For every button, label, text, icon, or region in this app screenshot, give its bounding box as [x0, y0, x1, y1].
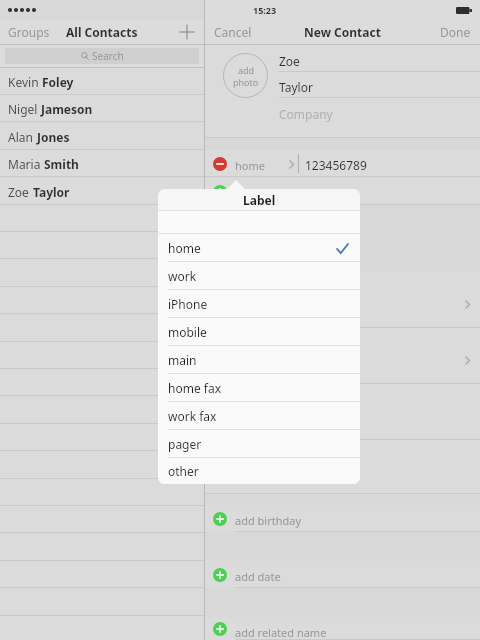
staticText: iPhone [168, 296, 208, 312]
button[interactable] [205, 440, 480, 494]
staticText: Maria [8, 156, 44, 172]
button[interactable]: Kevin [0, 68, 204, 95]
staticText: Company [279, 106, 333, 122]
button[interactable]: pager [158, 430, 360, 458]
staticText: Zoe [279, 53, 300, 69]
staticText: Label [243, 192, 276, 208]
staticText: 15:23 [253, 4, 277, 16]
button[interactable]: Alan [0, 123, 204, 150]
staticText: Groups [8, 24, 50, 40]
staticText: Foley [42, 74, 74, 90]
button[interactable]: Maria [0, 150, 204, 177]
button[interactable]: add related name [205, 617, 480, 640]
button[interactable]: Remove phone [213, 157, 227, 171]
button[interactable]: work fax [158, 402, 360, 430]
staticText: home [235, 158, 265, 173]
staticText: New Contact [304, 24, 381, 40]
staticText: home [168, 240, 201, 256]
staticText: 123456789 [305, 157, 367, 173]
staticText: Taylor [33, 184, 70, 200]
staticText: Jameson [41, 101, 93, 117]
staticText: main [168, 352, 197, 368]
staticText: work [168, 268, 197, 284]
button[interactable]: Cancel [205, 21, 261, 43]
staticText: home fax [168, 380, 221, 396]
button[interactable]: Add photo [223, 53, 268, 98]
staticText: Kevin [8, 74, 42, 90]
button[interactable]: add date [205, 561, 480, 588]
staticText: Jones [37, 129, 70, 145]
button[interactable]: home fax [158, 374, 360, 402]
staticText: work fax [168, 408, 217, 424]
staticText: Smith [44, 156, 79, 172]
staticText: Alan [8, 129, 37, 145]
button[interactable]: other [158, 458, 360, 484]
button[interactable]: main [158, 346, 360, 374]
staticText: pager [168, 436, 202, 452]
staticText: Nigel [8, 101, 41, 117]
button[interactable]: add email [205, 178, 480, 205]
button[interactable]: mobile [158, 318, 360, 346]
button[interactable]: Groups [0, 21, 58, 43]
button[interactable] [205, 272, 480, 328]
button[interactable] [205, 384, 480, 440]
staticText: Zoe [8, 184, 33, 200]
staticText: Done [440, 24, 471, 40]
button[interactable]: add birthday [205, 505, 480, 532]
staticText: Search [92, 49, 124, 63]
staticText: add email [235, 186, 286, 201]
button[interactable] [205, 328, 480, 384]
button[interactable]: Add contact [170, 23, 204, 41]
button[interactable]: work [158, 262, 360, 290]
staticText: add [238, 64, 255, 76]
staticText: add birthday [235, 513, 302, 528]
staticText: Taylor [279, 79, 313, 95]
button[interactable]: Search [5, 48, 199, 64]
staticText: All Contacts [66, 24, 138, 40]
button[interactable]: Zoe [0, 178, 204, 205]
button[interactable]: home [158, 234, 360, 262]
staticText: add related name [235, 625, 327, 640]
staticText: other [168, 463, 199, 479]
staticText: photo [233, 76, 259, 88]
staticText: add date [235, 569, 281, 584]
staticText: mobile [168, 324, 207, 340]
staticText: Cancel [214, 24, 252, 40]
button[interactable]: Done [431, 21, 480, 43]
button[interactable]: iPhone [158, 290, 360, 318]
button[interactable]: Nigel [0, 95, 204, 122]
